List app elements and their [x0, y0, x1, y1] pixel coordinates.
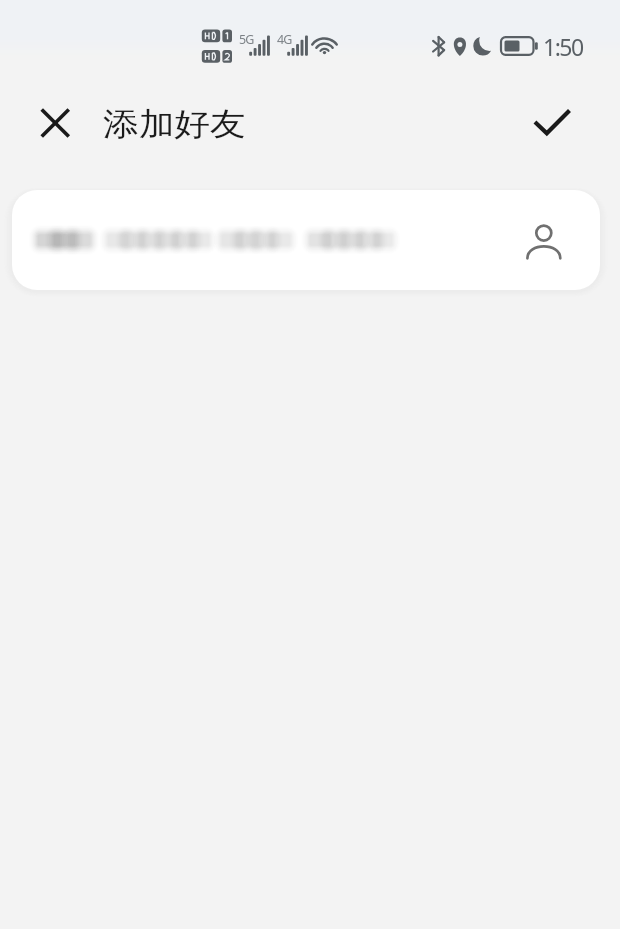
staticText: 5G [239, 31, 254, 48]
staticText: 4G [277, 31, 292, 48]
button[interactable]: Close [28, 95, 82, 149]
button[interactable]: Pick a contact [12, 190, 600, 290]
button[interactable]: Pick a contact [522, 219, 566, 263]
button[interactable]: Confirm [523, 95, 579, 151]
staticText: 1:50 [543, 31, 583, 62]
staticText: 添加好友 [103, 104, 246, 144]
